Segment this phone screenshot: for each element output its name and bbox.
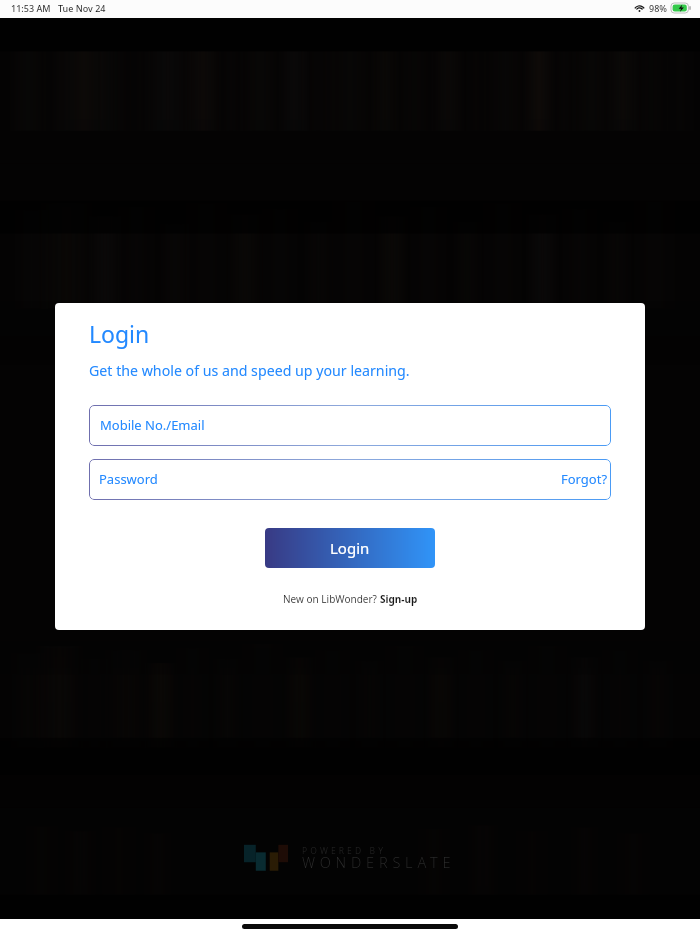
other: Wi-Fi	[634, 4, 645, 12]
staticText: Password	[99, 470, 158, 488]
staticText: New on LibWonder?	[283, 592, 380, 606]
button[interactable]: Login	[265, 528, 435, 568]
button[interactable]: Mobile No./Email	[89, 405, 611, 446]
staticText: Mobile No./Email	[100, 416, 205, 434]
other: Battery 98 percent charging	[671, 3, 691, 13]
button[interactable]: Password	[89, 459, 611, 500]
staticText: 11:53 AM	[11, 2, 51, 14]
staticText: Get the whole of us and speed up your le…	[89, 361, 410, 380]
staticText: Forgot?	[561, 470, 608, 488]
staticText: WONDERSLATE	[302, 852, 456, 872]
staticText: Tue Nov 24	[58, 2, 106, 14]
staticText: Login	[89, 318, 150, 349]
button[interactable]: Forgot?	[561, 471, 608, 489]
button[interactable]: Sign-up	[380, 592, 418, 606]
staticText: 98%	[649, 2, 667, 14]
staticText: Sign-up	[380, 592, 418, 606]
staticText: POWERED BY	[302, 845, 387, 857]
staticText: Login	[330, 538, 370, 558]
